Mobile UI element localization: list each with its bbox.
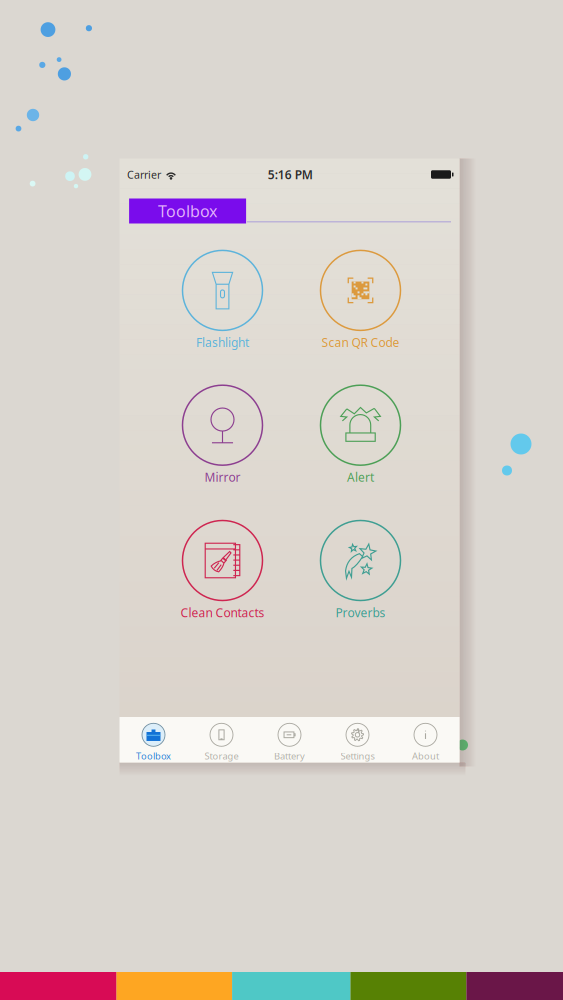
button[interactable]: Mirror xyxy=(157,385,287,485)
button[interactable]: About xyxy=(391,723,459,762)
staticText: Scan QR Code xyxy=(321,334,399,350)
staticText: Flashlight xyxy=(196,334,249,350)
staticText: Storage xyxy=(204,750,238,762)
button[interactable]: Clean Contacts xyxy=(157,520,287,620)
staticText: Clean Contacts xyxy=(180,604,264,620)
button[interactable]: Proverbs xyxy=(295,520,425,620)
staticText: Alert xyxy=(347,469,374,485)
button[interactable]: Scan QR Code xyxy=(295,250,425,350)
staticText: About xyxy=(412,750,439,762)
staticText: 5:16 PM xyxy=(268,166,313,182)
staticText: Toolbox xyxy=(158,200,217,222)
button[interactable]: Settings xyxy=(323,723,391,762)
button[interactable]: Battery xyxy=(255,723,323,762)
staticText: Mirror xyxy=(204,469,240,485)
button[interactable]: Storage xyxy=(187,723,255,762)
staticText: Carrier xyxy=(127,167,161,182)
staticText: Settings xyxy=(340,750,374,762)
button[interactable]: Alert xyxy=(295,385,425,485)
button[interactable]: Flashlight xyxy=(157,250,287,350)
staticText: Battery xyxy=(274,750,305,762)
staticText: Proverbs xyxy=(335,604,385,620)
button[interactable]: Toolbox xyxy=(119,723,187,762)
staticText: Toolbox xyxy=(136,750,171,762)
